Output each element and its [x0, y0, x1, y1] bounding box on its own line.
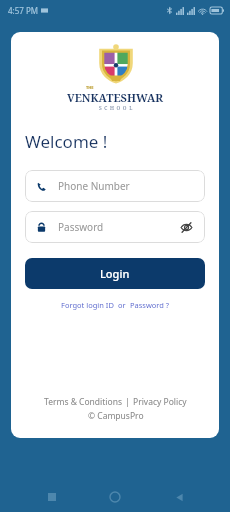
- staticText: VENKATESHWAR: [67, 90, 164, 105]
- button[interactable]: Login: [25, 258, 205, 289]
- staticText: Password ?: [130, 300, 170, 310]
- button[interactable]: Password: [25, 211, 205, 243]
- staticText: 4:57 PM: [8, 5, 39, 16]
- button[interactable]: Show password: [178, 219, 194, 235]
- button[interactable]: Recent apps: [40, 485, 64, 509]
- staticText: Password: [58, 220, 178, 234]
- staticText: Welcome !: [25, 130, 108, 153]
- staticText: S C H O O L: [99, 105, 133, 112]
- staticText: Phone Number: [58, 179, 194, 193]
- staticText: Login: [100, 266, 130, 281]
- button[interactable]: Password ?: [130, 300, 170, 310]
- button[interactable]: Terms & Conditions: [44, 396, 123, 408]
- button[interactable]: Phone Number: [25, 170, 205, 202]
- staticText: THE: [86, 85, 94, 90]
- staticText: Terms & Conditions: [44, 396, 123, 408]
- button[interactable]: Home: [103, 485, 127, 509]
- button[interactable]: Forgot login ID: [61, 300, 114, 310]
- staticText: Forgot login ID: [61, 300, 114, 310]
- staticText: Privacy Policy: [133, 396, 187, 408]
- staticText: or: [118, 300, 126, 310]
- staticText: |: [123, 396, 133, 408]
- staticText: © CampusPro: [88, 410, 144, 422]
- button[interactable]: Privacy Policy: [133, 396, 187, 408]
- button[interactable]: Back: [167, 485, 191, 509]
